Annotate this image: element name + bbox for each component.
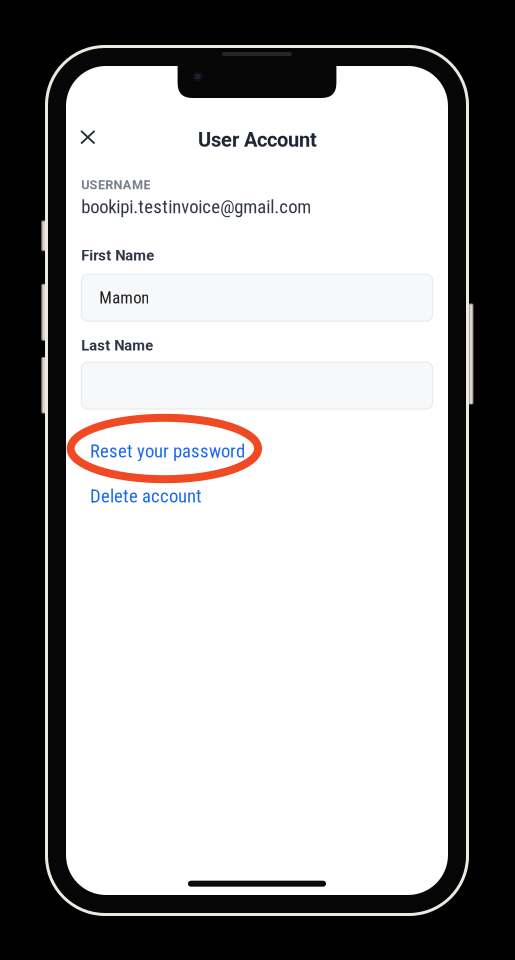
staticText: bookipi.testinvoice@gmail.com (81, 196, 311, 218)
staticText: Last Name (81, 337, 153, 354)
staticText: Mamon (99, 288, 149, 307)
button[interactable]: Reset your password (79, 433, 248, 469)
staticText: First Name (81, 247, 154, 264)
staticText: User Account (198, 128, 317, 151)
button[interactable]: Delete account (79, 478, 209, 514)
staticText: USERNAME (81, 178, 150, 192)
staticText: Reset your password (90, 440, 245, 462)
staticText: Delete account (90, 485, 202, 507)
button[interactable]: Close (66, 115, 110, 159)
